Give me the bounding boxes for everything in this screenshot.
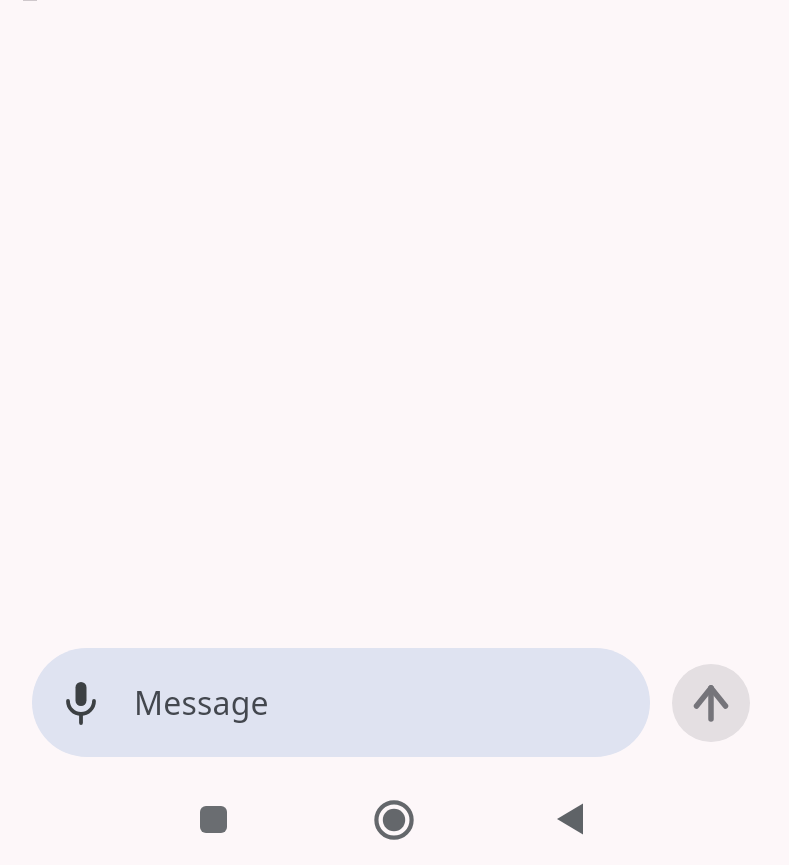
button[interactable] [672, 664, 750, 742]
button[interactable] [200, 806, 227, 833]
staticText: Message [134, 681, 269, 725]
button[interactable] [66, 682, 96, 724]
button[interactable] [374, 800, 414, 840]
button[interactable]: Message [32, 648, 650, 757]
button[interactable] [554, 800, 586, 838]
